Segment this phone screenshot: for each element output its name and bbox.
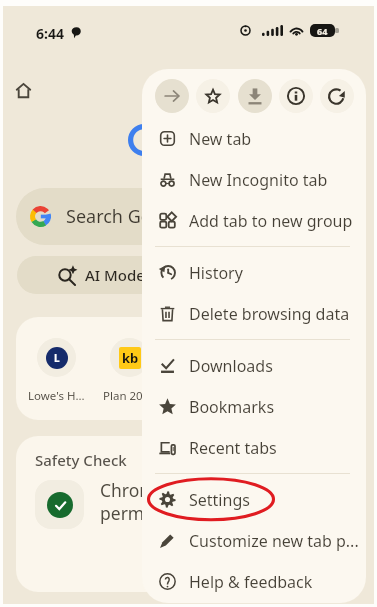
- button[interactable]: Home: [9, 76, 37, 104]
- button[interactable]: YouTube: [170, 338, 234, 404]
- button[interactable]: Search Google or type URL: [16, 188, 361, 245]
- button[interactable]: Downloads: [142, 345, 366, 386]
- staticText: Downloads: [189, 355, 273, 377]
- staticText: Help & feedback: [189, 571, 313, 593]
- button[interactable]: kb: [97, 338, 161, 404]
- button[interactable]: Bookmark page: [196, 79, 230, 113]
- button[interactable]: Recent tabs: [142, 427, 366, 468]
- staticText: Settings: [189, 489, 250, 511]
- staticText: Customize new tab p...: [189, 530, 359, 552]
- button[interactable]: Forward: [155, 79, 189, 113]
- button[interactable]: Settings: [142, 479, 366, 520]
- staticText: Lowe's H...: [28, 388, 85, 404]
- staticText: Safety Check: [35, 450, 127, 470]
- staticText: L: [54, 351, 60, 365]
- button[interactable]: History: [142, 252, 366, 293]
- button[interactable]: Bookmarks: [142, 386, 366, 427]
- staticText: AI Mode: [85, 265, 145, 285]
- staticText: Bookmarks: [189, 396, 275, 418]
- button[interactable]: AI Mode: [17, 256, 360, 294]
- button[interactable]: Page info: [279, 79, 313, 113]
- staticText: Recent tabs: [189, 437, 277, 459]
- button[interactable]: Help & feedback: [142, 561, 366, 602]
- staticText: Chrome is up to date and permissions loo…: [100, 478, 308, 525]
- button[interactable]: L: [24, 338, 88, 404]
- button[interactable]: New Incognito tab: [142, 159, 366, 200]
- button[interactable]: New tab: [142, 118, 366, 159]
- staticText: New tab: [189, 128, 252, 150]
- button[interactable]: Download page: [238, 79, 272, 113]
- staticText: 64: [317, 25, 328, 37]
- staticText: Delete browsing data: [189, 303, 350, 325]
- staticText: History: [189, 262, 243, 284]
- staticText: Plan 2026: [103, 388, 156, 404]
- staticText: New Incognito tab: [189, 169, 328, 191]
- button[interactable]: Add tab to new group: [142, 200, 366, 241]
- button[interactable]: Docs: [243, 338, 307, 404]
- staticText: Add tab to new group: [189, 210, 353, 232]
- button[interactable]: Reload: [320, 79, 354, 113]
- staticText: Search Google or type URL: [66, 204, 292, 229]
- staticText: kb: [122, 349, 139, 367]
- staticText: 6:44: [36, 24, 64, 43]
- button[interactable]: Customize new tab p...: [142, 520, 366, 561]
- button[interactable]: Delete browsing data: [142, 293, 366, 334]
- staticText: YouTube: [179, 388, 226, 404]
